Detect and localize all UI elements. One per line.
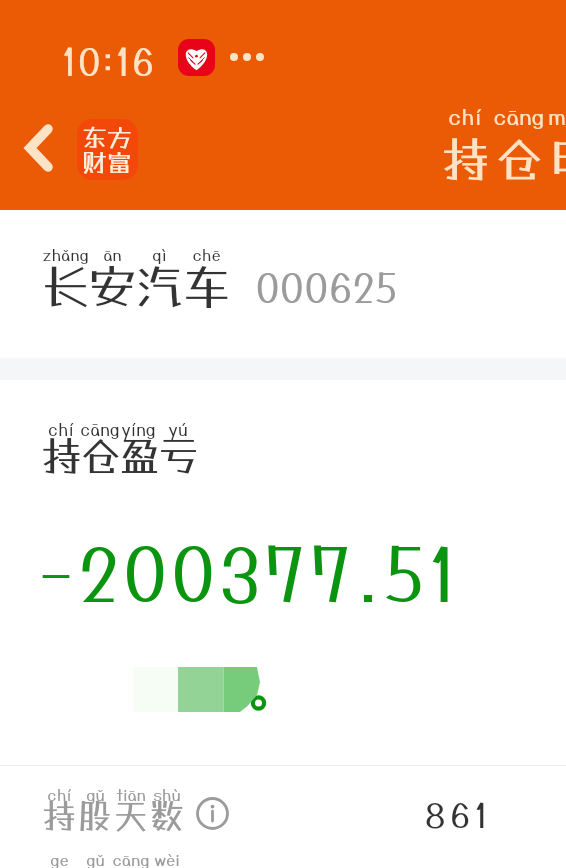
staticText: míng — [548, 103, 566, 129]
staticText: chē — [192, 245, 221, 264]
staticText: 仓 — [80, 432, 119, 480]
staticText: 盈 — [119, 432, 158, 480]
button[interactable]: Notification app icon — [178, 39, 215, 76]
staticText: 财富 — [82, 147, 133, 176]
staticText: chí — [48, 419, 74, 439]
staticText: cāng — [493, 103, 545, 129]
staticText: ān — [103, 245, 122, 264]
staticText: 安 — [89, 258, 136, 315]
button[interactable]: chí — [0, 766, 566, 850]
other: Info about holding days — [196, 797, 229, 830]
staticText: yú — [168, 419, 188, 439]
staticText: tiān — [116, 785, 146, 804]
staticText: 861 — [425, 795, 493, 835]
staticText: chí — [448, 103, 482, 129]
staticText: 车 — [183, 258, 230, 315]
button[interactable]: More options — [230, 46, 264, 68]
staticText: cāng — [112, 850, 150, 868]
staticText: 持 — [41, 432, 80, 480]
staticText: 东方 — [82, 122, 133, 151]
staticText: 天 — [114, 796, 148, 836]
staticText: chí — [47, 785, 72, 804]
staticText: 股 — [78, 796, 112, 836]
staticText: 持 — [441, 131, 490, 188]
staticText: gǔ — [86, 850, 105, 868]
staticText: 汽 — [136, 258, 183, 315]
staticText: qì — [152, 245, 167, 264]
staticText: -200377.51 — [38, 531, 463, 616]
staticText: 明 — [549, 131, 566, 188]
staticText: 10:16 — [62, 40, 156, 84]
staticText: ge — [50, 850, 69, 868]
staticText: 亏 — [158, 432, 197, 480]
staticText: 000625 — [256, 265, 398, 311]
staticText: wèi — [154, 850, 180, 868]
staticText: yíng — [121, 419, 156, 439]
staticText: 持 — [42, 796, 76, 836]
staticText: 数 — [150, 796, 184, 836]
staticText: shù — [153, 785, 181, 804]
staticText: zhǎng — [42, 245, 89, 264]
staticText: gǔ — [86, 785, 105, 804]
button[interactable]: East Money — [77, 119, 138, 180]
staticText: 长 — [42, 258, 89, 315]
staticText: cāng — [80, 419, 120, 439]
button[interactable]: Back — [2, 108, 74, 188]
staticText: 仓 — [495, 131, 544, 188]
